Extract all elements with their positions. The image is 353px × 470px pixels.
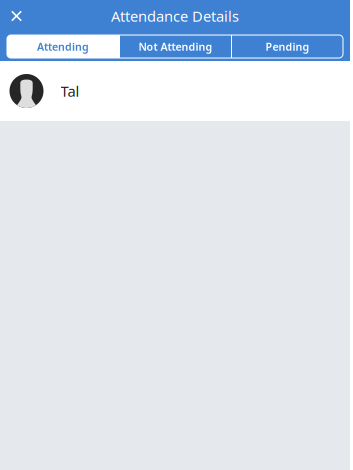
staticText: Attending xyxy=(37,39,89,54)
staticText: Attendance Details xyxy=(111,6,239,26)
button[interactable]: Pending xyxy=(232,35,343,58)
button[interactable]: Tal xyxy=(0,61,351,121)
staticText: Pending xyxy=(265,39,309,54)
staticText: Tal xyxy=(60,81,79,101)
button[interactable]: Attending xyxy=(7,35,119,58)
button[interactable]: Not Attending xyxy=(120,35,231,58)
staticText: Not Attending xyxy=(138,39,212,54)
button[interactable]: Close xyxy=(0,0,33,32)
